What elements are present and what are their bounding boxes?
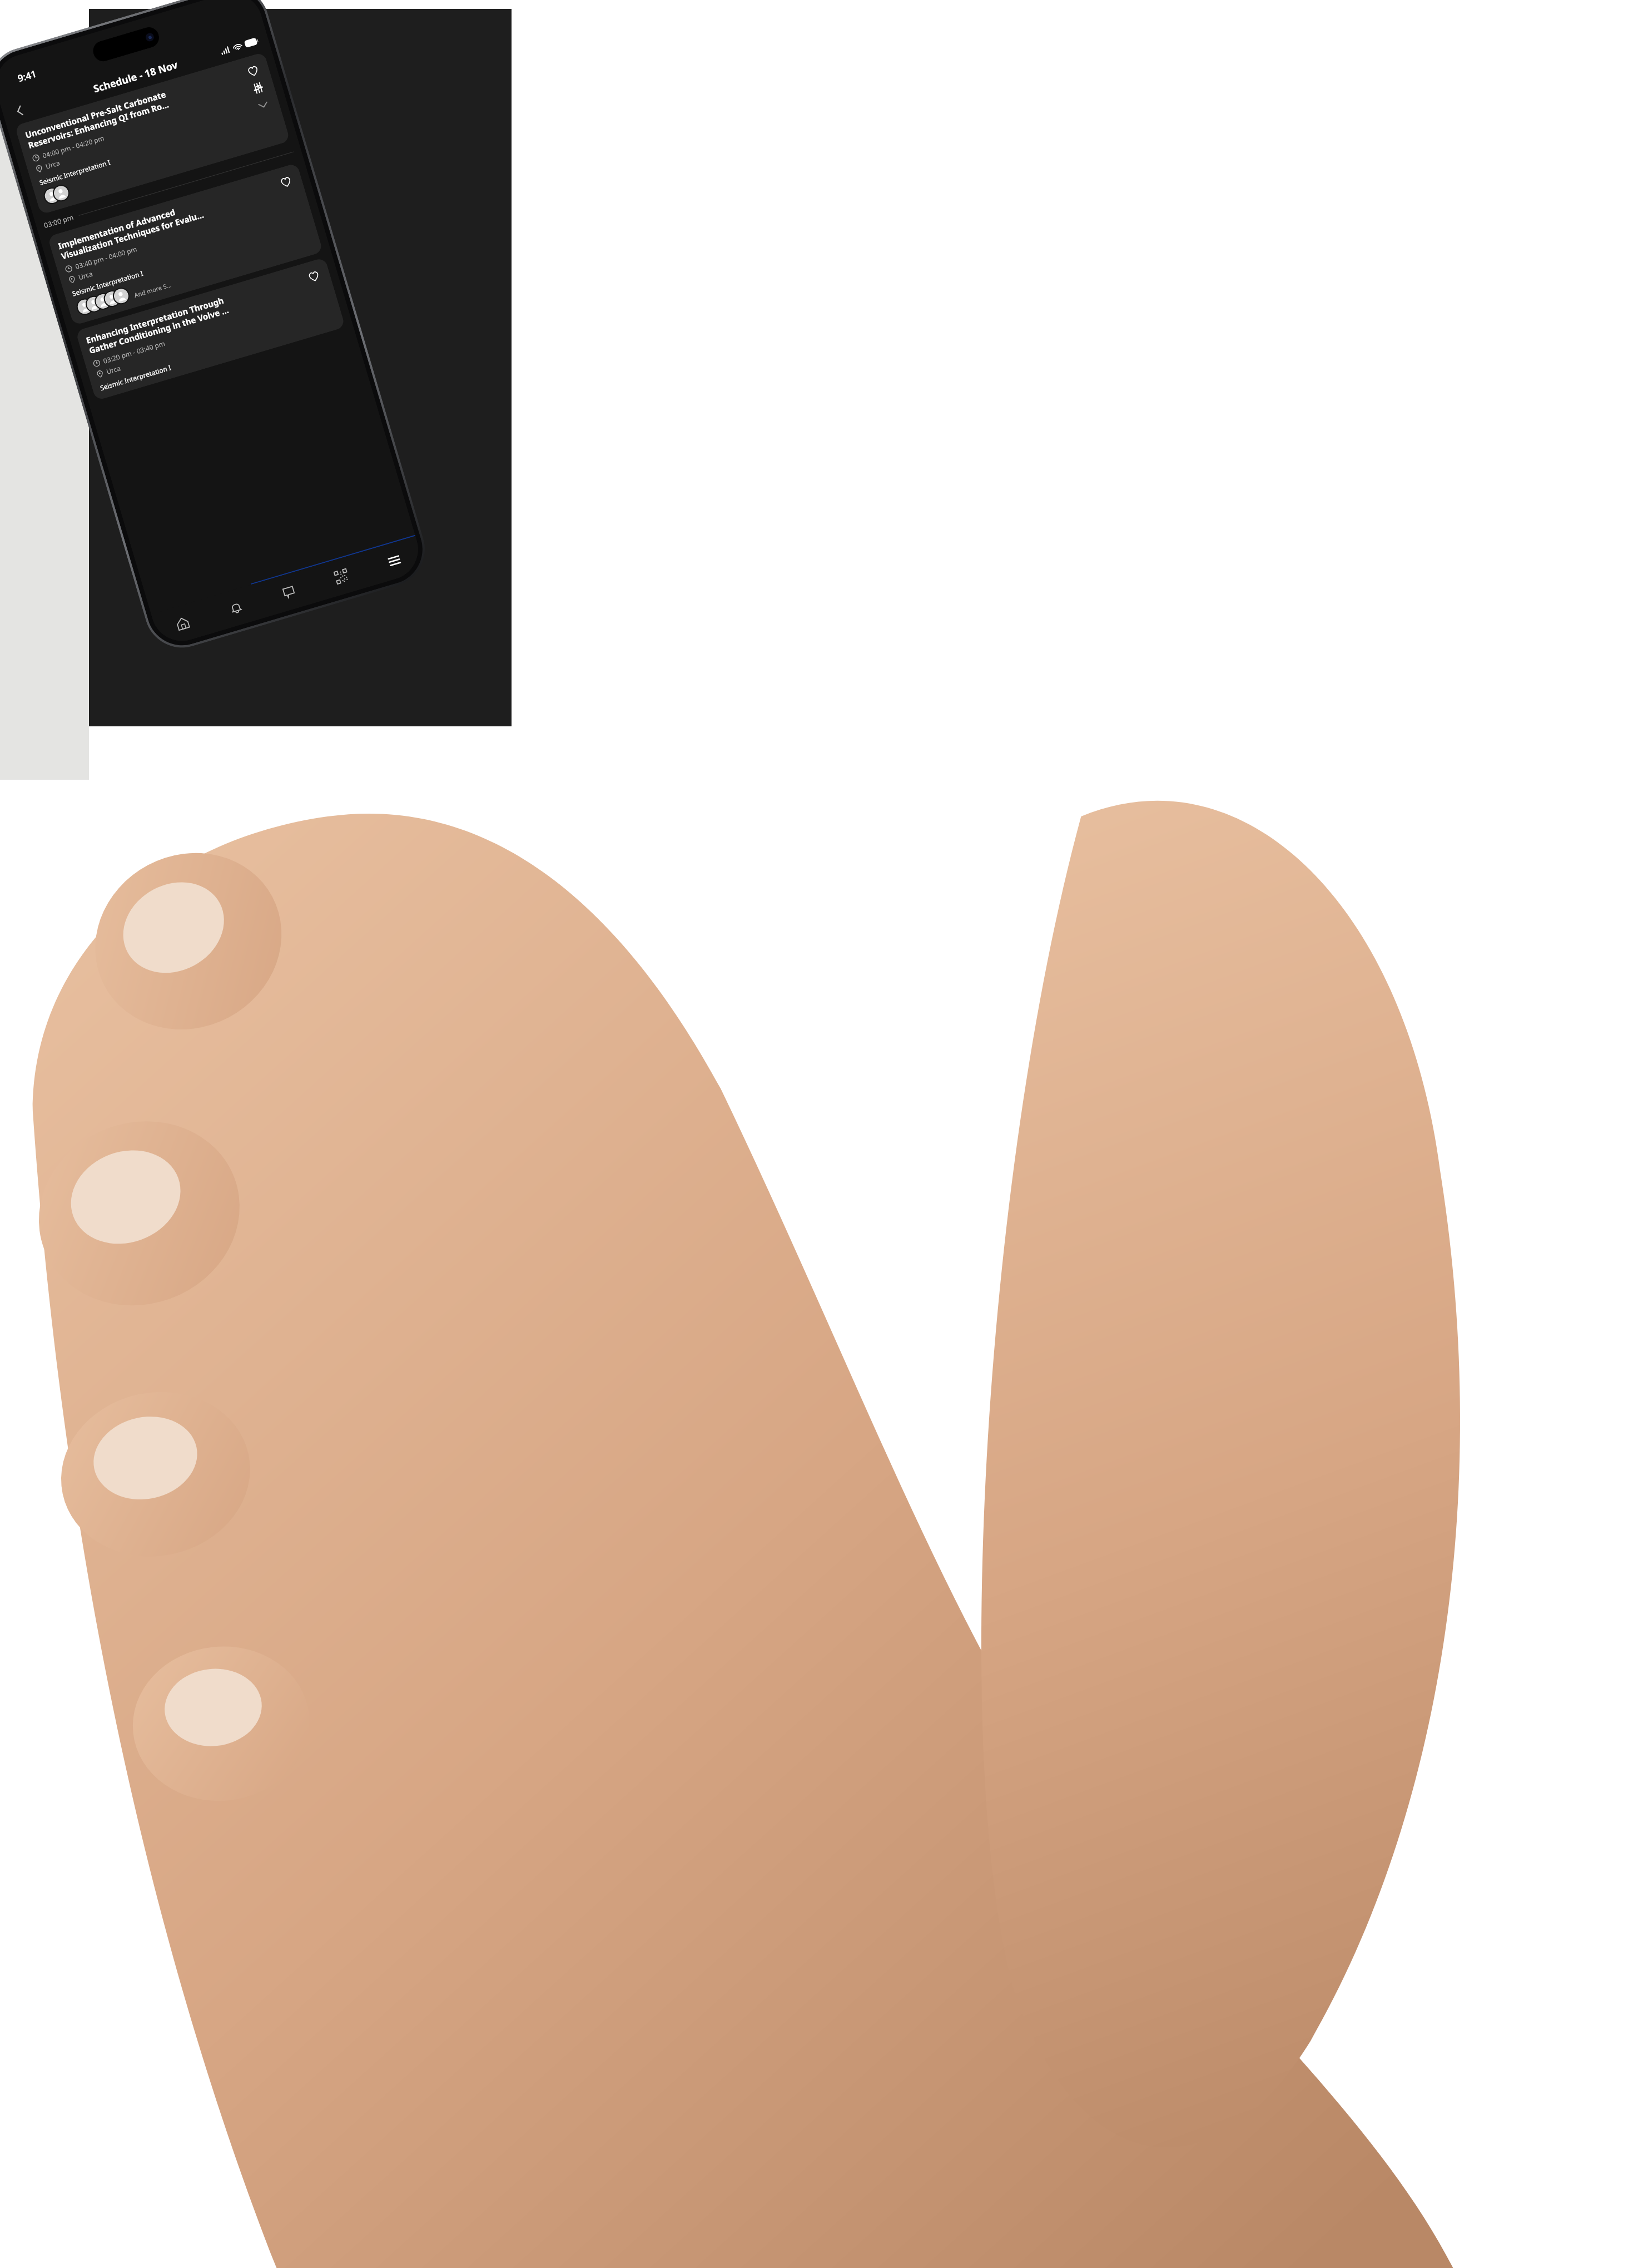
staticText: Urca <box>44 158 61 171</box>
staticText: 03:20 pm - 03:40 pm <box>102 339 166 365</box>
button[interactable]: Expand <box>254 96 272 114</box>
staticText: Enhancing Interpretation Through Gather … <box>85 294 230 356</box>
staticText: Seismic Interpretation I <box>71 268 145 298</box>
button[interactable]: Favorite <box>275 171 296 192</box>
staticText: And more 5… <box>133 280 172 299</box>
staticText: 9:41 <box>16 67 38 85</box>
button[interactable]: Scan QR <box>310 552 373 601</box>
button[interactable]: Enhancing Interpretation Through Gather … <box>75 257 345 401</box>
staticText: 04:00 pm - 04:20 pm <box>41 133 105 160</box>
button[interactable]: Implementation of Advanced Visualization… <box>47 163 323 326</box>
staticText: Unconventional Pre-Salt Carbonate Reserv… <box>24 88 170 151</box>
button[interactable]: Unconventional Pre-Salt Carbonate Reserv… <box>15 52 290 215</box>
staticText: Urca <box>105 363 122 376</box>
button[interactable]: Back <box>8 99 32 123</box>
button[interactable]: Messages <box>257 567 320 617</box>
staticText: 03:00 pm <box>43 213 75 230</box>
button[interactable]: Favorite <box>242 60 263 81</box>
staticText: Seismic Interpretation I <box>99 363 172 392</box>
button[interactable]: Notifications <box>204 583 267 633</box>
staticText: 03:40 pm - 04:00 pm <box>74 244 138 271</box>
staticText: Urca <box>77 269 94 282</box>
button[interactable]: Filter <box>247 77 268 98</box>
button[interactable]: Menu <box>363 536 426 586</box>
staticText: Implementation of Advanced Visualization… <box>57 199 205 262</box>
button[interactable]: Home <box>151 598 215 648</box>
staticText: Schedule - 18 Nov <box>92 58 180 96</box>
staticText: Seismic Interpretation I <box>38 157 112 187</box>
button[interactable]: Favorite <box>303 266 324 286</box>
